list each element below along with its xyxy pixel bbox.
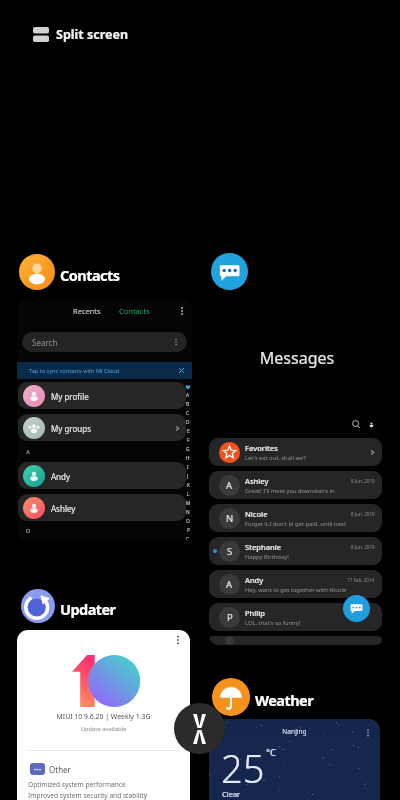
staticText: Andy [245, 575, 264, 585]
staticText: Ashley [245, 476, 269, 486]
staticText: P [187, 527, 190, 534]
staticText: Let's eat out, shall we? [245, 454, 306, 462]
staticText: Recents [73, 306, 101, 316]
button[interactable]: More options [171, 633, 185, 647]
staticText: Philip [245, 608, 266, 618]
staticText: 8 Jun, 2019 [351, 511, 375, 517]
button[interactable]: Favorites [209, 438, 382, 466]
staticText: A [226, 578, 233, 591]
staticText: L [187, 491, 190, 498]
button[interactable]: Contacts [19, 254, 120, 290]
button[interactable]: A [209, 570, 382, 598]
staticText: Great! I'll meet you downstairs in ten .… [245, 487, 351, 495]
staticText: C [186, 410, 190, 417]
button[interactable]: A [209, 471, 382, 499]
staticText: 8 Jun, 2019 [351, 478, 375, 484]
staticText: B [186, 401, 190, 408]
staticText: Forget it,I don't bl get paid. until nex… [245, 520, 351, 528]
staticText: I [187, 464, 189, 471]
button[interactable]: Contacts [365, 418, 377, 430]
staticText: Andy [51, 471, 71, 482]
staticText: Favorites [245, 443, 278, 453]
staticText: Ashley [51, 503, 76, 514]
button[interactable]: S [209, 537, 382, 565]
button[interactable] [209, 636, 382, 645]
button[interactable]: Tap to sync contacts with Mi Cloud [17, 362, 192, 379]
button[interactable]: My profile [18, 382, 186, 409]
staticText: LOL, that's so funny! [245, 619, 301, 627]
staticText: F [187, 437, 190, 444]
staticText: Hey, want to get together with Nicole ..… [245, 586, 347, 594]
button[interactable]: Search [350, 418, 362, 430]
staticText: D [26, 527, 31, 535]
button[interactable]: My groups [18, 414, 186, 441]
staticText: A [26, 448, 30, 456]
staticText: 25 [221, 742, 265, 794]
button[interactable]: P [209, 603, 382, 631]
staticText: H [186, 455, 190, 462]
staticText: N [186, 509, 190, 516]
button[interactable]: More options [362, 727, 374, 739]
staticText: Improved system security and stability [28, 791, 148, 800]
staticText: 17 Feb, 2014 [347, 577, 375, 583]
staticText: G [186, 446, 190, 453]
staticText: Happy Birthday! [245, 553, 289, 561]
staticText: D [186, 419, 190, 426]
staticText: Nanjing [209, 727, 380, 736]
staticText: Contacts [60, 265, 120, 285]
staticText: M [186, 500, 191, 507]
staticText: Updater [60, 599, 116, 619]
button[interactable]: New message [343, 595, 370, 622]
staticText: A [226, 479, 233, 492]
staticText: Update available [17, 725, 190, 733]
button[interactable]: Updater [21, 589, 116, 623]
staticText: Stephanie [245, 542, 281, 552]
staticText: Other [49, 764, 71, 775]
staticText: E [187, 428, 190, 435]
staticText: P [227, 611, 233, 624]
staticText: Q [186, 536, 190, 541]
staticText: Clear [222, 789, 241, 799]
button[interactable]: Dismiss [177, 366, 186, 375]
staticText: K [187, 482, 190, 489]
staticText: Nicole [245, 509, 268, 519]
staticText: J [187, 473, 189, 480]
staticText: Search [32, 337, 58, 348]
staticText: A [186, 392, 190, 399]
button[interactable]: Messages [211, 253, 248, 290]
staticText: Split screen [56, 26, 129, 43]
button[interactable]: Andy [18, 462, 186, 489]
staticText: 8 Jun, 2019 [351, 544, 375, 550]
staticText: MIUI 10 9.6.20 | Weekly 1.3G [17, 712, 190, 721]
staticText: Weather [255, 690, 314, 710]
staticText: Optimized system performance [28, 780, 126, 789]
button[interactable]: Recents [70, 304, 104, 318]
button[interactable]: Split screen [31, 24, 131, 45]
button[interactable]: N [209, 504, 382, 532]
staticText: My profile [51, 391, 89, 402]
button[interactable]: Weather [212, 678, 314, 716]
staticText: Messages [208, 347, 386, 369]
staticText: N [226, 512, 234, 525]
staticText: Tap to sync contacts with Mi Cloud [29, 367, 120, 375]
button[interactable]: Search [22, 332, 187, 352]
button[interactable]: Contacts [116, 304, 153, 318]
button[interactable]: More options [176, 305, 188, 317]
staticText: °C [266, 746, 277, 759]
staticText: My groups [51, 423, 92, 434]
staticText: O [186, 518, 190, 525]
staticText: Contacts [119, 306, 150, 316]
button[interactable]: Ashley [18, 494, 186, 521]
staticText: S [227, 545, 233, 558]
